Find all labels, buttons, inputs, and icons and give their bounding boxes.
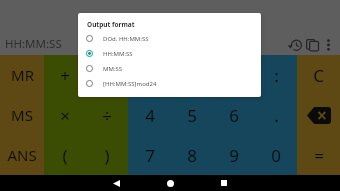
staticText: [HH:MM:SS]mod24 — [103, 80, 157, 88]
staticText: C — [313, 64, 324, 87]
staticText: MS — [11, 105, 33, 125]
button[interactable]: 0 — [255, 135, 297, 175]
button[interactable]: 4 — [128, 95, 171, 135]
button[interactable]: HH:MM:SS — [78, 46, 261, 61]
button[interactable]: MS — [0, 95, 44, 135]
staticText: MM:SS — [103, 65, 123, 73]
staticText: = — [314, 144, 324, 167]
button[interactable]: : — [255, 55, 297, 95]
button[interactable]: MM:SS — [78, 61, 261, 76]
staticText: − — [102, 64, 112, 87]
staticText: HH:MM:SS — [5, 36, 62, 52]
button[interactable]: MR — [0, 55, 44, 95]
button[interactable]: ( — [44, 135, 86, 175]
button[interactable]: DOd. HH:MM:SS — [78, 31, 261, 46]
staticText: + — [60, 64, 70, 87]
button[interactable]: More options — [320, 36, 337, 53]
staticText: HH:MM:SS — [103, 50, 133, 58]
button[interactable]: 9 — [213, 135, 255, 175]
button[interactable]: Backspace — [297, 95, 340, 135]
staticText: 4 — [145, 104, 155, 127]
button[interactable]: Home — [143, 175, 197, 191]
button[interactable]: History — [286, 36, 304, 53]
staticText: DOd. HH:MM:SS — [103, 35, 149, 43]
button[interactable]: + — [44, 55, 86, 95]
staticText: 7 — [145, 144, 155, 167]
staticText: Output format — [87, 20, 135, 29]
staticText: MR — [11, 65, 34, 85]
button[interactable]: 7 — [128, 135, 171, 175]
staticText: 1 — [145, 64, 155, 87]
staticText: ÷ — [102, 104, 112, 127]
staticText: 6 — [229, 104, 239, 127]
button[interactable]: 5 — [171, 95, 213, 135]
staticText: 9 — [229, 144, 239, 167]
button[interactable]: ANS — [0, 135, 44, 175]
button[interactable]: = — [297, 135, 340, 175]
button[interactable]: − — [86, 55, 128, 95]
button[interactable]: × — [44, 95, 86, 135]
staticText: ANS — [7, 145, 37, 165]
button[interactable]: Recents — [197, 175, 251, 191]
button[interactable]: 6 — [213, 95, 255, 135]
staticText: × — [60, 104, 70, 127]
button[interactable]: 8 — [171, 135, 213, 175]
staticText: ( — [62, 144, 68, 167]
staticText: ) — [104, 144, 110, 167]
staticText: : — [274, 64, 279, 87]
button[interactable]: ) — [86, 135, 128, 175]
button[interactable]: 1 — [128, 55, 171, 95]
button[interactable]: Back — [89, 175, 143, 191]
button[interactable]: C — [297, 55, 340, 95]
staticText: 5 — [187, 104, 197, 127]
button[interactable]: ÷ — [86, 95, 128, 135]
button[interactable]: Copy — [304, 36, 320, 53]
staticText: 0 — [271, 144, 281, 167]
button[interactable]: [HH:MM:SS]mod24 — [78, 76, 261, 91]
button[interactable]: . — [255, 95, 297, 135]
staticText: 8 — [187, 144, 197, 167]
staticText: . — [274, 104, 279, 127]
